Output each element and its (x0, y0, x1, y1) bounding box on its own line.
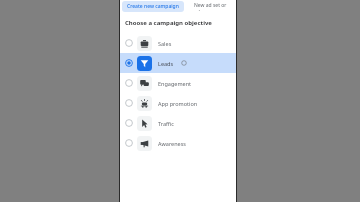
staticText: Sales (158, 40, 172, 47)
button[interactable]: App promotion (120, 93, 237, 113)
button[interactable]: Sales (120, 33, 237, 53)
button[interactable]: Traffic (120, 113, 237, 133)
button[interactable]: Create new campaign (122, 1, 184, 12)
button[interactable]: Engagement (120, 73, 237, 93)
button[interactable]: Awareness (120, 133, 237, 153)
staticText: Create new campaign (127, 3, 179, 10)
staticText: Choose a campaign objective (125, 19, 212, 27)
staticText: New ad set or ad (194, 2, 233, 11)
button[interactable]: New ad set or ad (190, 0, 237, 13)
staticText: Leads (158, 60, 174, 67)
staticText: App promotion (158, 100, 198, 107)
staticText: Traffic (158, 120, 174, 127)
button[interactable]: Leads (120, 53, 237, 73)
staticText: Awareness (158, 140, 186, 147)
staticText: Engagement (158, 80, 192, 87)
